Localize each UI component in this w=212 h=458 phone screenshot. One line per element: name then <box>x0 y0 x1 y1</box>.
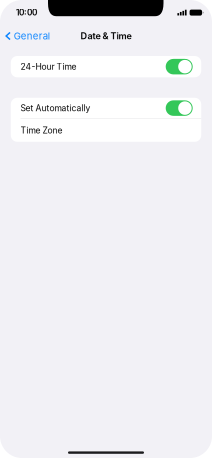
button[interactable]: Time Zone <box>11 119 201 142</box>
staticText: 24-Hour Time <box>20 61 76 72</box>
staticText: 10:00 <box>16 8 37 18</box>
staticText: General <box>14 30 50 42</box>
button[interactable]: General <box>0 26 57 46</box>
staticText: Set Automatically <box>20 103 90 113</box>
button[interactable]: Set Automatically <box>11 98 201 118</box>
staticText: Date & Time <box>80 30 131 41</box>
button[interactable]: 24-Hour Time <box>11 56 201 77</box>
staticText: Time Zone <box>20 125 62 135</box>
